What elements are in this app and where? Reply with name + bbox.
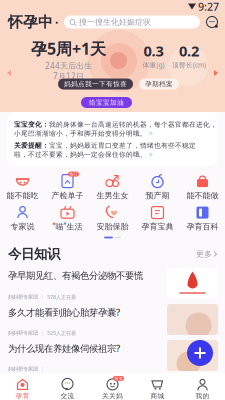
staticText: 关爱提醒： xyxy=(14,141,49,150)
staticText: 妈妈帮专家团 xyxy=(8,330,38,336)
staticText: 9:27 xyxy=(198,0,219,14)
staticText: 妈妈帮专家团 xyxy=(8,366,38,372)
staticText: 7月12日 xyxy=(53,71,84,81)
button[interactable]: 更多 xyxy=(196,249,217,259)
button[interactable]: 生男生女 xyxy=(90,171,135,200)
button[interactable]: 专家说 xyxy=(0,202,45,231)
staticText: 多久才能看到胎心胎芽孕囊? xyxy=(8,306,120,318)
staticText: 关关妈 xyxy=(102,392,123,400)
staticText: 怀孕中 xyxy=(8,13,53,31)
staticText: 我的 xyxy=(195,392,209,400)
staticText: | xyxy=(41,329,44,337)
staticText: 妈妈帮专家团 xyxy=(8,294,38,300)
button[interactable]: 给宝宝加油 xyxy=(81,97,132,108)
staticText: · xyxy=(55,14,58,30)
staticText: 孕早期见红、有褐色分泌物不要慌 xyxy=(8,270,143,281)
staticText: > xyxy=(147,129,153,138)
button[interactable]: 搜一搜生化妊娠症状 xyxy=(64,15,200,28)
staticText: 预产期 xyxy=(145,191,169,200)
button[interactable]: 商城 xyxy=(135,374,180,400)
staticText: 体重(g) xyxy=(142,60,164,69)
staticText: 小尾巴渐渐缩小，手和脚开始变得分明哦。 xyxy=(14,129,147,138)
staticText: 宝宝，妈妈最近胃口变差了，情绪也有些不稳定 xyxy=(49,141,196,150)
staticText: 更多 xyxy=(196,249,212,259)
staticText: 宝宝变化： xyxy=(14,120,49,129)
staticText: 妈妈点我一下有惊喜 xyxy=(64,80,127,88)
staticText: 顶臀长(cm) xyxy=(172,60,206,69)
button[interactable]: 我的 xyxy=(180,374,225,400)
staticText: > xyxy=(147,150,153,159)
staticText: 孕育 xyxy=(15,392,29,400)
staticText: 孕期档案 xyxy=(145,80,173,88)
staticText: 今日知识 xyxy=(8,246,60,262)
staticText: “喵”生活 xyxy=(52,221,82,232)
button[interactable]: 妈妈点我一下有惊喜 xyxy=(58,78,133,89)
button[interactable]: Messages xyxy=(206,16,218,28)
staticText: 安胎保胎 xyxy=(96,222,128,231)
staticText: 244天后出生 xyxy=(45,60,92,71)
staticText: 孕育百科 xyxy=(186,222,218,231)
button[interactable]: 孕育百科 xyxy=(180,202,225,231)
staticText: 热门 xyxy=(69,172,77,176)
button[interactable]: Create post xyxy=(187,340,213,366)
staticText: 超值 xyxy=(114,376,122,381)
staticText: 商城 xyxy=(150,392,164,400)
staticText: 生男生女 xyxy=(96,191,128,200)
staticText: 0.3 xyxy=(143,41,163,60)
staticText: 为什么现在养娃像伺候祖宗? xyxy=(8,342,120,354)
staticText: | xyxy=(41,293,44,301)
staticText: 578人正在看 xyxy=(47,293,76,301)
staticText: 能不能吃 xyxy=(6,191,38,200)
staticText: | xyxy=(41,365,44,373)
staticText: 给宝宝加油 xyxy=(89,98,124,107)
button[interactable]: 热门 xyxy=(45,171,90,200)
button[interactable]: 能不能做 xyxy=(180,171,225,200)
staticText: ··· xyxy=(209,17,215,26)
staticText: 我的身体像一台高速运转的机器，每个器官都在进化， xyxy=(49,120,217,129)
button[interactable]: 为什么现在养娃像伺候祖宗? xyxy=(0,337,225,373)
button[interactable]: 安胎保胎 xyxy=(90,202,135,231)
staticText: 孕育宝典 xyxy=(141,222,173,231)
button[interactable]: 多久才能看到胎心胎芽孕囊? xyxy=(0,301,225,337)
staticText: 专家说 xyxy=(10,222,34,231)
staticText: 0.2 xyxy=(179,41,199,60)
staticText: ··· xyxy=(64,378,70,387)
button[interactable]: 能不能吃 xyxy=(0,171,45,200)
button[interactable]: 超值 xyxy=(90,374,135,400)
button[interactable]: 怀孕中 xyxy=(0,13,58,31)
staticText: 孕5周+1天 xyxy=(31,38,106,59)
staticText: 产检单子 xyxy=(51,191,83,200)
staticText: 搜一搜生化妊娠症状 xyxy=(79,17,151,27)
button[interactable]: 预产期 xyxy=(135,171,180,200)
button[interactable]: ··· xyxy=(45,374,90,400)
staticText: 525人正在看 xyxy=(47,329,76,337)
staticText: 能不能做 xyxy=(186,191,218,200)
button[interactable]: “喵”生活 xyxy=(45,201,90,232)
button[interactable]: 孕早期见红、有褐色分泌物不要慌 xyxy=(0,265,225,301)
button[interactable]: 孕期档案 xyxy=(139,78,179,89)
staticText: 啦，不过不要紧，妈妈一定会保住你的哦。 xyxy=(14,150,147,159)
staticText: 交流 xyxy=(60,392,74,400)
button[interactable]: 孕育 xyxy=(0,374,45,400)
button[interactable]: 孕育宝典 xyxy=(135,202,180,231)
